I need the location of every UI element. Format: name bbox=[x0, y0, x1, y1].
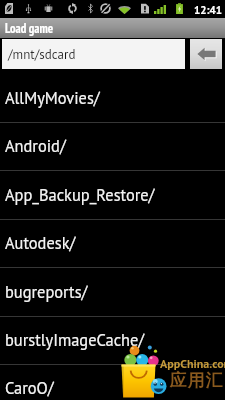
staticText: CaroO/ bbox=[5, 377, 54, 398]
staticText: burstlyImageCache/ bbox=[5, 329, 145, 350]
staticText: bugreports/ bbox=[5, 281, 88, 302]
button[interactable]: Back bbox=[190, 39, 222, 69]
button[interactable]: App_Backup_Restore/ bbox=[0, 172, 225, 220]
button[interactable]: burstlyImageCache/ bbox=[0, 317, 225, 365]
staticText: App_Backup_Restore/ bbox=[5, 184, 155, 205]
button[interactable]: CaroO/ bbox=[0, 365, 225, 400]
staticText: AppChina.com bbox=[160, 356, 225, 372]
staticText: Load game bbox=[5, 20, 54, 36]
staticText: Android/ bbox=[5, 135, 66, 156]
button[interactable]: Autodesk/ bbox=[0, 220, 225, 268]
staticText: Autodesk/ bbox=[5, 232, 76, 253]
staticText: 12:41 bbox=[194, 3, 222, 17]
staticText: /mnt/sdcard bbox=[8, 46, 76, 63]
staticText: 应用汇 bbox=[169, 370, 223, 391]
staticText: AllMyMovies/ bbox=[5, 87, 100, 108]
button[interactable]: AllMyMovies/ bbox=[0, 75, 225, 123]
button[interactable]: Android/ bbox=[0, 123, 225, 171]
button[interactable]: /mnt/sdcard bbox=[2, 39, 185, 69]
button[interactable]: bugreports/ bbox=[0, 269, 225, 317]
